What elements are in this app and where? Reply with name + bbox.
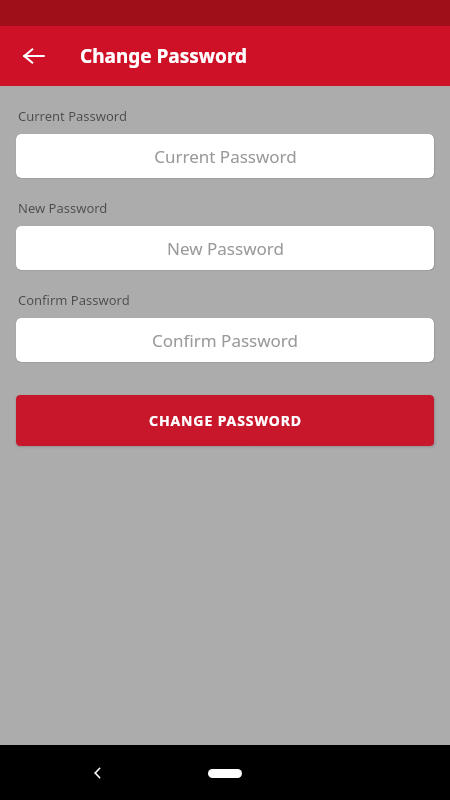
staticText: Change Password (80, 43, 248, 69)
staticText: Confirm Password (152, 329, 298, 352)
button[interactable]: Back (12, 34, 56, 78)
staticText: Current Password (18, 107, 127, 125)
staticText: New Password (167, 237, 284, 260)
button[interactable]: Confirm Password (16, 318, 434, 362)
button[interactable]: New Password (16, 226, 434, 270)
staticText: Current Password (154, 145, 297, 168)
staticText: New Password (18, 199, 108, 217)
staticText: CHANGE PASSWORD (149, 411, 302, 430)
button[interactable]: CHANGE PASSWORD (16, 395, 434, 446)
button[interactable]: Home (208, 769, 242, 778)
button[interactable]: Current Password (16, 134, 434, 178)
staticText: Confirm Password (18, 291, 130, 309)
button[interactable]: Back (78, 753, 118, 793)
